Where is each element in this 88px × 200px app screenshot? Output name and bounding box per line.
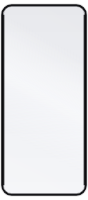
button[interactable]: Phone screen protector product image [0,0,88,200]
